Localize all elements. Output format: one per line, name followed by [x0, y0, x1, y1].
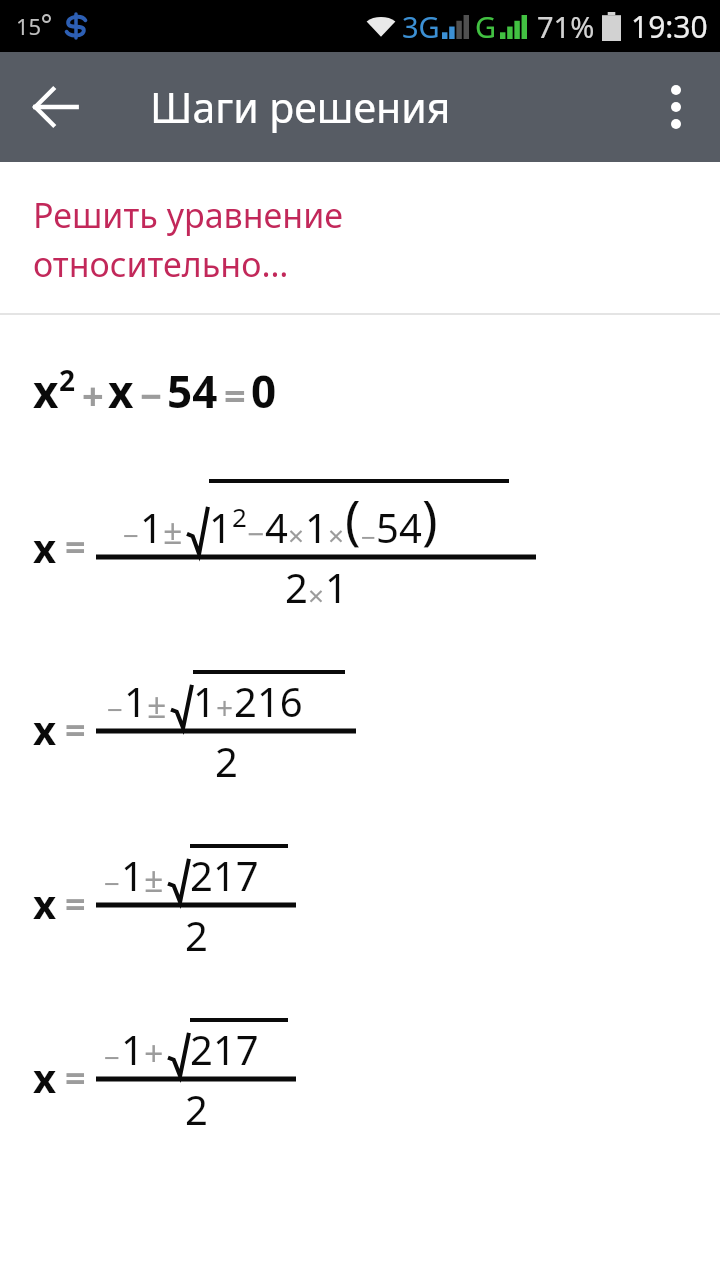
staticText: 1 — [140, 500, 163, 554]
staticText: − — [140, 369, 163, 421]
staticText: x — [33, 520, 57, 574]
staticText: − — [104, 864, 121, 902]
staticText: = — [65, 1053, 86, 1102]
staticText: G — [475, 7, 497, 46]
staticText: + — [216, 687, 234, 728]
staticText: 217 — [190, 1022, 259, 1076]
staticText: − — [107, 690, 124, 728]
staticText: Решить уравнение относительно… — [33, 192, 344, 287]
staticText: 0 — [251, 361, 277, 421]
staticText: − — [247, 513, 265, 554]
staticText: ) — [422, 483, 438, 554]
staticText: 1 — [124, 674, 147, 728]
staticText: 1 — [121, 848, 144, 902]
staticText: × — [328, 516, 345, 554]
staticText: = — [65, 879, 86, 928]
staticText: x — [33, 876, 57, 930]
staticText: 4 — [265, 500, 288, 554]
staticText: 15 — [16, 11, 42, 41]
staticText: + — [144, 1030, 164, 1076]
button[interactable]: More options — [632, 52, 720, 162]
staticText: 1 — [305, 500, 328, 554]
staticText: 1 — [209, 500, 232, 554]
staticText: = — [224, 369, 246, 421]
staticText: 2 — [232, 499, 247, 534]
staticText: x — [33, 1050, 57, 1104]
staticText: 71% — [537, 7, 595, 46]
staticText: x — [33, 702, 57, 756]
staticText: = — [65, 522, 86, 571]
staticText: 19:30 — [631, 6, 708, 47]
button[interactable]: Back — [0, 52, 112, 162]
staticText: x — [33, 361, 59, 421]
staticText: − — [123, 516, 140, 554]
staticText: 2 — [185, 908, 208, 962]
staticText: 2 — [285, 560, 308, 614]
staticText: 1 — [121, 1022, 144, 1076]
staticText: x — [108, 361, 134, 421]
staticText: 3G — [402, 7, 440, 46]
staticText: 2 — [185, 1082, 208, 1136]
staticText: 1 — [193, 674, 216, 728]
staticText: Шаги решения — [150, 79, 451, 135]
staticText: 2 — [215, 734, 238, 788]
staticText: − — [361, 519, 376, 554]
staticText: ± — [144, 856, 164, 902]
staticText: ( — [345, 483, 361, 554]
staticText: 217 — [190, 848, 259, 902]
staticText: 2 — [59, 361, 76, 399]
staticText: = — [65, 705, 86, 754]
staticText: 216 — [234, 674, 303, 728]
staticText: 54 — [167, 361, 218, 421]
staticText: 1 — [325, 560, 348, 614]
staticText: + — [82, 369, 104, 421]
staticText: × — [288, 516, 305, 554]
staticText: ± — [147, 682, 167, 728]
staticText: − — [104, 1038, 121, 1076]
staticText: ± — [163, 508, 183, 554]
staticText: 54 — [376, 500, 422, 554]
staticText: × — [308, 576, 325, 614]
